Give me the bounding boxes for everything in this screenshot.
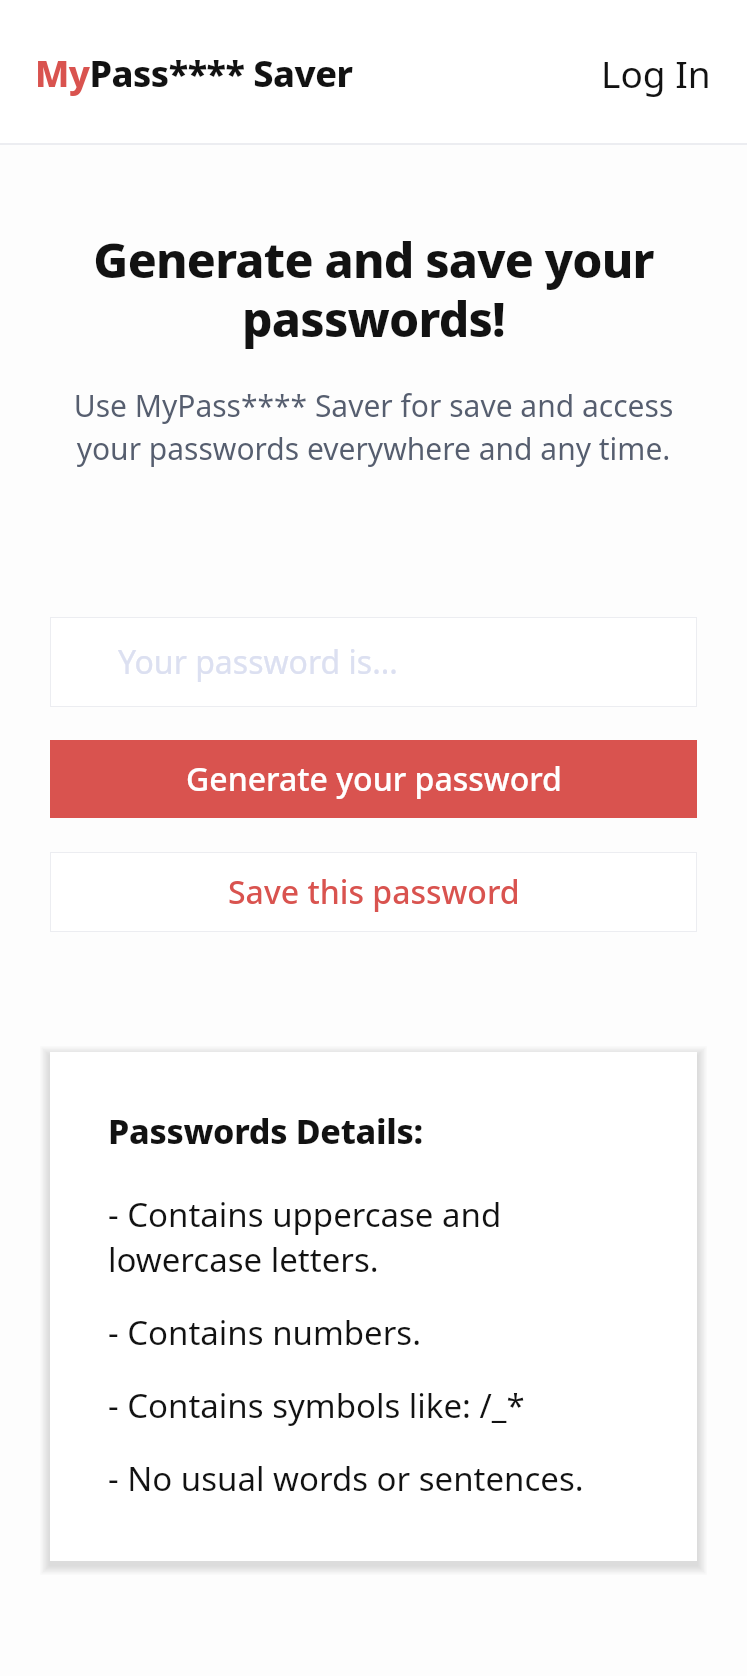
button[interactable]: MyPass**** Saver: [35, 41, 353, 106]
button[interactable]: Log In: [595, 38, 717, 108]
staticText: Generate and save your passwords!: [50, 227, 697, 351]
staticText: Your password is...: [118, 640, 398, 684]
staticText: - No usual words or sentences.: [108, 1456, 661, 1501]
staticText: - Contains numbers.: [108, 1310, 661, 1355]
staticText: Use MyPass**** Saver for save and access…: [50, 385, 697, 469]
staticText: - Contains uppercase and lowercase lette…: [108, 1192, 661, 1282]
staticText: MyPass**** Saver: [35, 49, 353, 98]
button[interactable]: Generate your password: [50, 740, 697, 818]
staticText: - Contains symbols like: /_*: [108, 1383, 661, 1428]
staticText: Generate your password: [186, 757, 562, 801]
button[interactable]: Save this password: [50, 852, 697, 932]
staticText: Passwords Details:: [108, 1108, 423, 1154]
staticText: Save this password: [228, 870, 520, 914]
button[interactable]: Your password is...: [50, 617, 697, 707]
staticText: Log In: [601, 48, 711, 98]
button[interactable]: Passwords Details:: [50, 1052, 697, 1561]
